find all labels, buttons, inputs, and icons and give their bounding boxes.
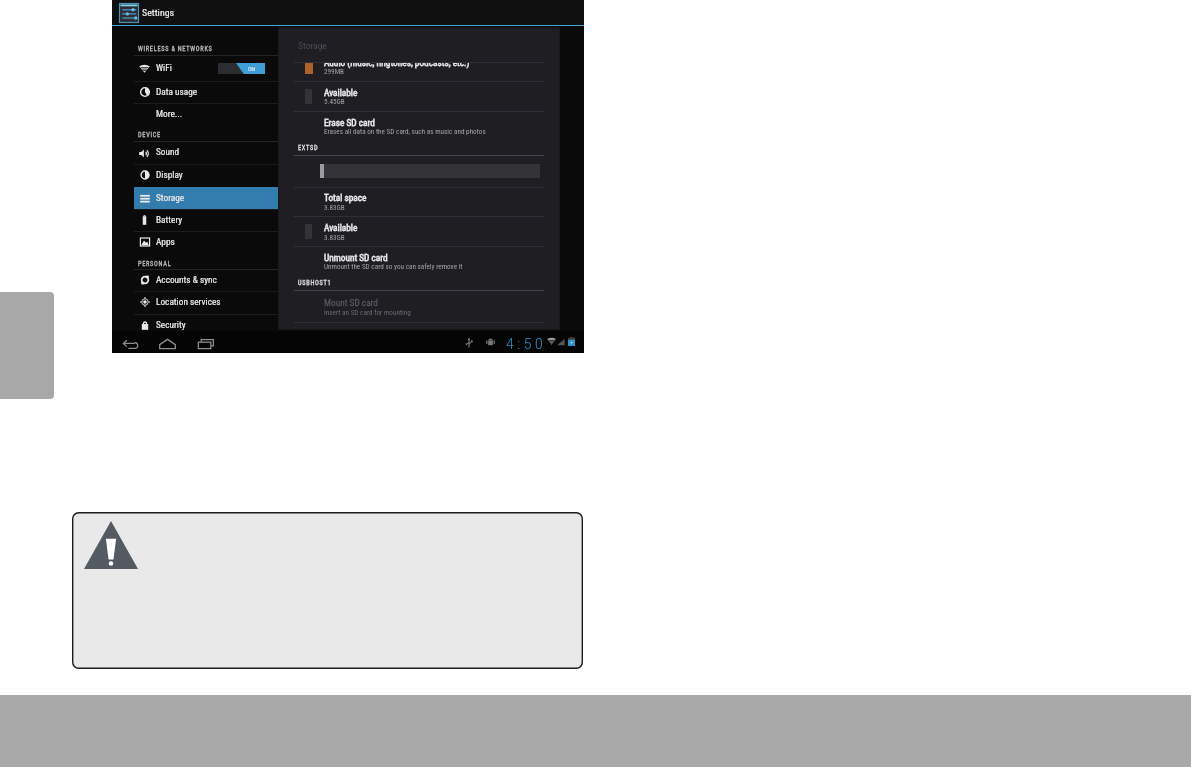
- staticText: More...: [156, 108, 183, 119]
- button[interactable]: Recent apps: [194, 336, 218, 352]
- button[interactable]: Storage: [134, 187, 278, 209]
- button[interactable]: [294, 111, 544, 141]
- staticText: DEVICE: [138, 131, 161, 138]
- staticText: USBHOST1: [298, 279, 332, 286]
- staticText: Erase SD card: [324, 117, 375, 128]
- staticText: WiFi: [156, 62, 172, 73]
- staticText: Unmount SD card: [324, 252, 388, 263]
- staticText: Apps: [156, 236, 175, 247]
- button[interactable]: More...: [134, 103, 278, 125]
- button[interactable]: [294, 81, 544, 111]
- staticText: 299MB: [324, 67, 344, 75]
- staticText: Battery: [156, 214, 183, 225]
- staticText: Data usage: [156, 86, 198, 97]
- button[interactable]: Accounts & sync: [134, 269, 278, 291]
- staticText: Audio (music, ringtones, podcasts, etc.): [324, 62, 470, 68]
- staticText: Sound: [156, 146, 180, 157]
- staticText: Display: [156, 169, 183, 180]
- staticText: 5.45GB: [324, 97, 345, 105]
- staticText: Unmount the SD card so you can safely re…: [324, 262, 463, 270]
- button[interactable]: Apps: [134, 231, 278, 253]
- staticText: Storage: [156, 192, 185, 203]
- staticText: 4:50: [506, 336, 547, 352]
- button[interactable]: Home: [156, 336, 179, 352]
- staticText: Total space: [324, 192, 367, 203]
- staticText: PERSONAL: [138, 260, 172, 267]
- button[interactable]: Back: [119, 337, 142, 351]
- staticText: Security: [156, 319, 186, 330]
- staticText: Accounts & sync: [156, 274, 217, 285]
- button[interactable]: [294, 246, 544, 279]
- button[interactable]: Sound: [134, 141, 278, 164]
- button[interactable]: Location services: [134, 291, 278, 313]
- staticText: Available: [324, 87, 358, 98]
- staticText: Mount SD card: [324, 297, 378, 308]
- staticText: Settings: [142, 7, 175, 19]
- button[interactable]: [294, 216, 544, 246]
- staticText: ON: [248, 65, 256, 72]
- button[interactable]: [294, 62, 544, 81]
- staticText: Erases all data on the SD card, such as …: [324, 127, 486, 135]
- staticText: Available: [324, 222, 358, 233]
- staticText: 3.83GB: [324, 233, 345, 241]
- button[interactable]: WiFi: [134, 55, 278, 81]
- staticText: Storage: [298, 40, 327, 51]
- staticText: Location services: [156, 296, 221, 307]
- staticText: Insert an SD card for mounting: [324, 308, 411, 316]
- button[interactable]: [294, 187, 544, 216]
- button[interactable]: [294, 290, 544, 322]
- button[interactable]: Battery: [134, 209, 278, 232]
- button[interactable]: Display: [134, 164, 278, 187]
- staticText: WIRELESS & NETWORKS: [138, 45, 213, 52]
- staticText: EXTSD: [298, 144, 319, 151]
- button[interactable]: [112, 0, 584, 25]
- staticText: 3.83GB: [324, 203, 345, 211]
- button[interactable]: Security: [134, 314, 278, 336]
- button[interactable]: Data usage: [134, 81, 278, 103]
